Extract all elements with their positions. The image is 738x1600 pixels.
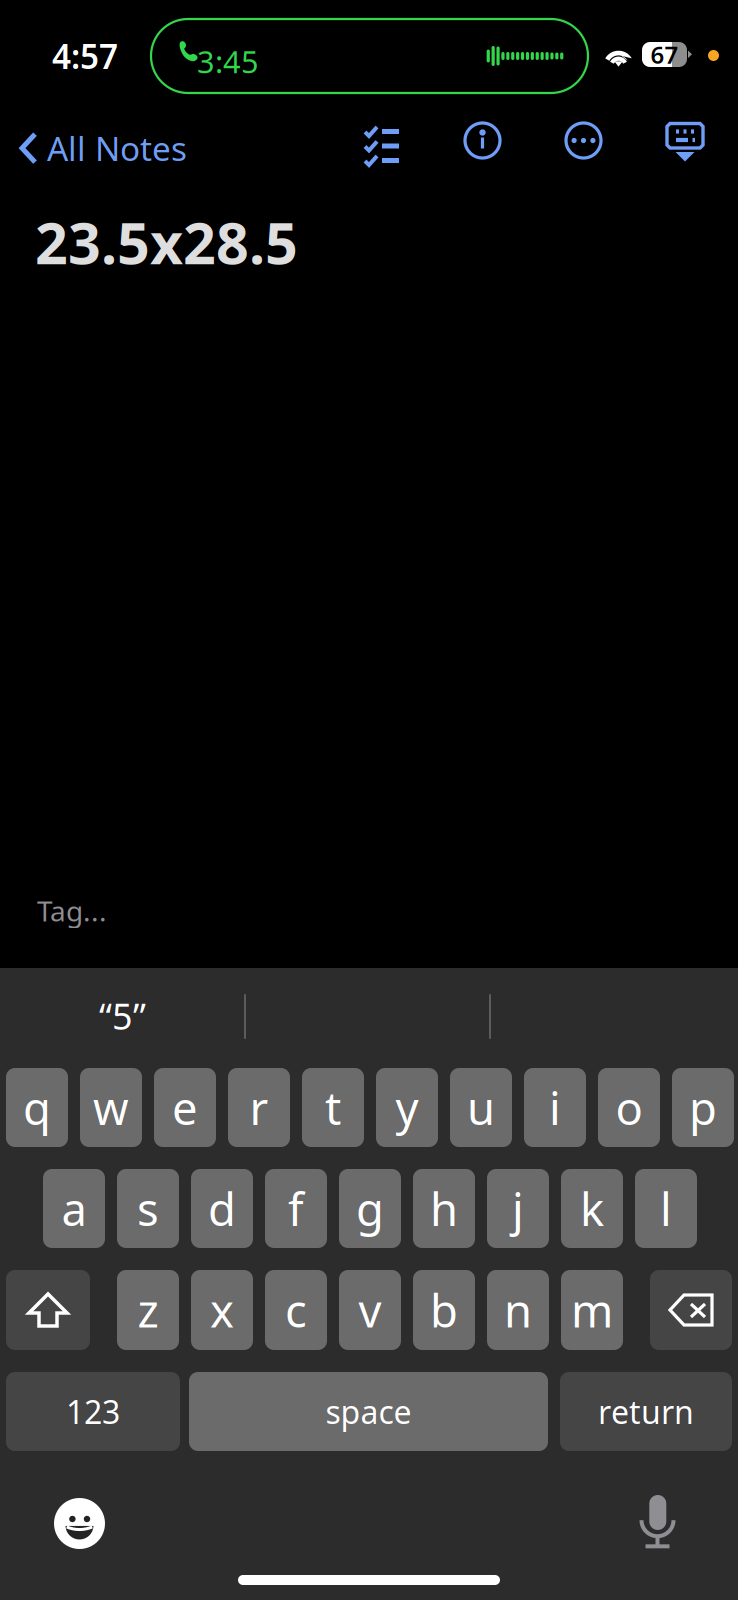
button[interactable]: Dictate — [640, 1495, 675, 1548]
staticText: v — [358, 1280, 381, 1340]
button[interactable]: b — [413, 1270, 475, 1350]
button[interactable]: d — [191, 1169, 253, 1248]
button[interactable]: More — [566, 123, 601, 158]
staticText: r — [249, 1077, 268, 1138]
button[interactable]: i — [524, 1068, 586, 1147]
staticText: h — [430, 1178, 458, 1239]
staticText: n — [504, 1280, 532, 1340]
staticText: w — [93, 1077, 129, 1138]
button[interactable]: j — [487, 1169, 549, 1248]
button[interactable]: z — [117, 1270, 179, 1350]
staticText: s — [137, 1178, 159, 1239]
button[interactable]: space — [189, 1372, 548, 1451]
staticText: j — [512, 1178, 524, 1239]
staticText: g — [356, 1178, 384, 1239]
staticText: 123 — [66, 1390, 120, 1433]
button[interactable]: m — [561, 1270, 623, 1350]
button[interactable]: All Notes — [19, 114, 187, 182]
staticText: “5” — [99, 992, 146, 1040]
staticText: Tag... — [37, 892, 107, 929]
staticText: k — [580, 1178, 604, 1239]
button[interactable]: r — [228, 1068, 290, 1147]
button[interactable]: Shift — [6, 1270, 90, 1350]
staticText: p — [689, 1077, 717, 1138]
staticText: e — [172, 1077, 198, 1138]
staticText: return — [598, 1390, 694, 1433]
button[interactable]: y — [376, 1068, 438, 1147]
staticText: d — [208, 1178, 236, 1239]
staticText: l — [660, 1178, 672, 1239]
button[interactable]: n — [487, 1270, 549, 1350]
staticText: b — [430, 1280, 458, 1340]
staticText: x — [210, 1280, 234, 1340]
staticText: y — [395, 1077, 418, 1138]
button[interactable]: return — [560, 1372, 732, 1451]
staticText: t — [325, 1077, 341, 1138]
button[interactable]: s — [117, 1169, 179, 1248]
button[interactable]: v — [339, 1270, 401, 1350]
button[interactable]: f — [265, 1169, 327, 1248]
button[interactable]: Hide keyboard — [666, 122, 704, 162]
staticText: z — [137, 1280, 158, 1340]
staticText: f — [288, 1178, 304, 1239]
button[interactable]: l — [635, 1169, 697, 1248]
button[interactable]: g — [339, 1169, 401, 1248]
button[interactable]: p — [672, 1068, 734, 1147]
button[interactable]: x — [191, 1270, 253, 1350]
button[interactable]: e — [154, 1068, 216, 1147]
button[interactable]: t — [302, 1068, 364, 1147]
button[interactable]: h — [413, 1169, 475, 1248]
staticText: 23.5x28.5 — [35, 204, 298, 280]
button[interactable]: q — [6, 1068, 68, 1147]
button[interactable]: 123 — [6, 1372, 180, 1451]
button[interactable]: Info — [465, 123, 500, 158]
button[interactable]: u — [450, 1068, 512, 1147]
staticText: m — [571, 1280, 613, 1340]
staticText: a — [61, 1178, 86, 1239]
button[interactable]: Emoji — [54, 1498, 105, 1549]
button[interactable]: k — [561, 1169, 623, 1248]
staticText: u — [467, 1077, 495, 1138]
button[interactable]: c — [265, 1270, 327, 1350]
button[interactable]: Delete — [650, 1270, 732, 1350]
staticText: c — [285, 1280, 307, 1340]
button[interactable]: a — [43, 1169, 105, 1248]
staticText: space — [325, 1390, 411, 1433]
button[interactable]: w — [80, 1068, 142, 1147]
button[interactable]: o — [598, 1068, 660, 1147]
staticText: 67 — [650, 39, 678, 70]
staticText: 3:45 — [197, 41, 259, 82]
staticText: i — [549, 1077, 561, 1138]
staticText: q — [23, 1077, 51, 1138]
button[interactable]: Checklist — [364, 125, 400, 161]
staticText: 4:57 — [52, 34, 118, 78]
staticText: All Notes — [47, 126, 187, 170]
staticText: o — [615, 1077, 642, 1138]
